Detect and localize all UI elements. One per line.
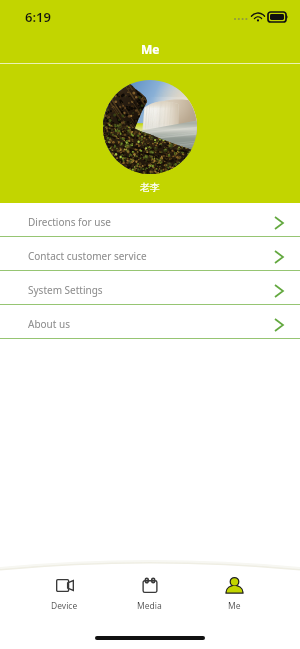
button[interactable]: Me: [192, 576, 277, 614]
button[interactable]: Media: [107, 576, 192, 614]
staticText: 老李: [140, 181, 160, 194]
button[interactable]: Directions for use: [0, 203, 300, 237]
staticText: Media: [137, 600, 162, 612]
button[interactable]: Contact customer service: [0, 237, 300, 271]
staticText: Me: [228, 600, 241, 612]
staticText: 6:19: [25, 8, 51, 26]
button[interactable]: System Settings: [0, 271, 300, 305]
staticText: Device: [51, 600, 78, 612]
staticText: About us: [28, 317, 70, 331]
staticText: Me: [141, 41, 160, 57]
staticText: Directions for use: [28, 215, 111, 229]
other: Device: [56, 579, 74, 592]
other: Media: [142, 578, 158, 593]
button[interactable]: Device: [22, 576, 107, 614]
other: Me: [226, 578, 243, 593]
button[interactable]: About us: [0, 305, 300, 339]
staticText: System Settings: [28, 283, 103, 297]
staticText: Contact customer service: [28, 249, 147, 263]
